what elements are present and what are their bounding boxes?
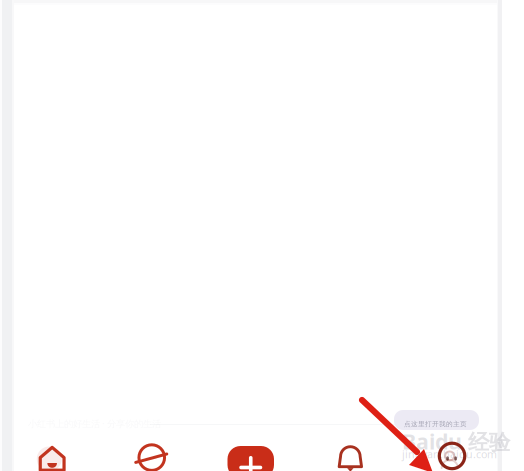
button[interactable]: Explore (136, 444, 167, 471)
button[interactable]: Notifications (335, 444, 366, 471)
button[interactable]: Home (36, 444, 67, 471)
staticText: jingyan.baidu.com (402, 447, 497, 461)
staticText: Baidu 经验 (402, 427, 510, 455)
button[interactable]: Me (434, 444, 465, 471)
button[interactable]: Create post (227, 444, 274, 471)
staticText: 点这里打开我的主页 (404, 420, 467, 428)
